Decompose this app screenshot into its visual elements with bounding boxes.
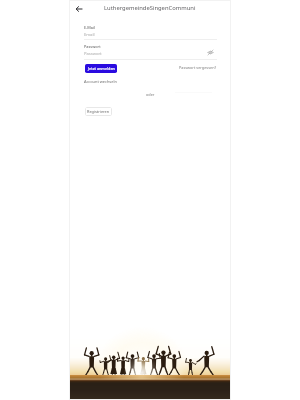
button[interactable]: Jetzt anmelden [85, 64, 117, 73]
button[interactable]: Back [72, 2, 85, 15]
staticText: oder [146, 92, 155, 97]
staticText: Registrieren [87, 109, 110, 114]
staticText: Jetzt anmelden [88, 66, 115, 71]
button[interactable]: Show password [206, 48, 214, 56]
button[interactable]: Account wechseln [84, 79, 117, 84]
staticText: Email [84, 32, 95, 38]
staticText: Passwort [84, 44, 101, 49]
staticText: Passwort vergessen? [179, 65, 217, 70]
staticText: Passwort [84, 51, 102, 57]
button[interactable]: Passwort vergessen? [179, 65, 217, 70]
staticText: LuthergemeindeSingenCommuni [104, 4, 196, 12]
button[interactable]: Registrieren [85, 107, 112, 116]
staticText: E-Mail [84, 25, 96, 30]
staticText: Account wechseln [84, 79, 117, 84]
